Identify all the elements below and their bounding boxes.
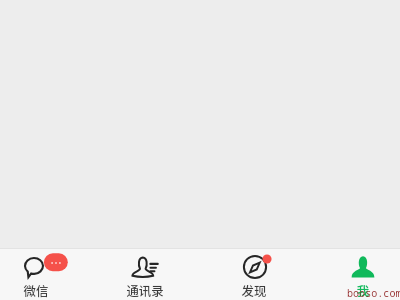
staticText: 通讯录 <box>109 282 181 300</box>
staticText: 微信 <box>0 282 72 300</box>
button[interactable]: Me <box>327 249 399 299</box>
button[interactable]: Discover <box>218 249 290 299</box>
staticText: 我 <box>327 282 399 300</box>
staticText: booso.com <box>347 286 400 300</box>
button[interactable]: Contacts <box>109 249 181 299</box>
staticText: 发现 <box>218 282 290 300</box>
button[interactable]: WeChat chats <box>0 249 72 299</box>
